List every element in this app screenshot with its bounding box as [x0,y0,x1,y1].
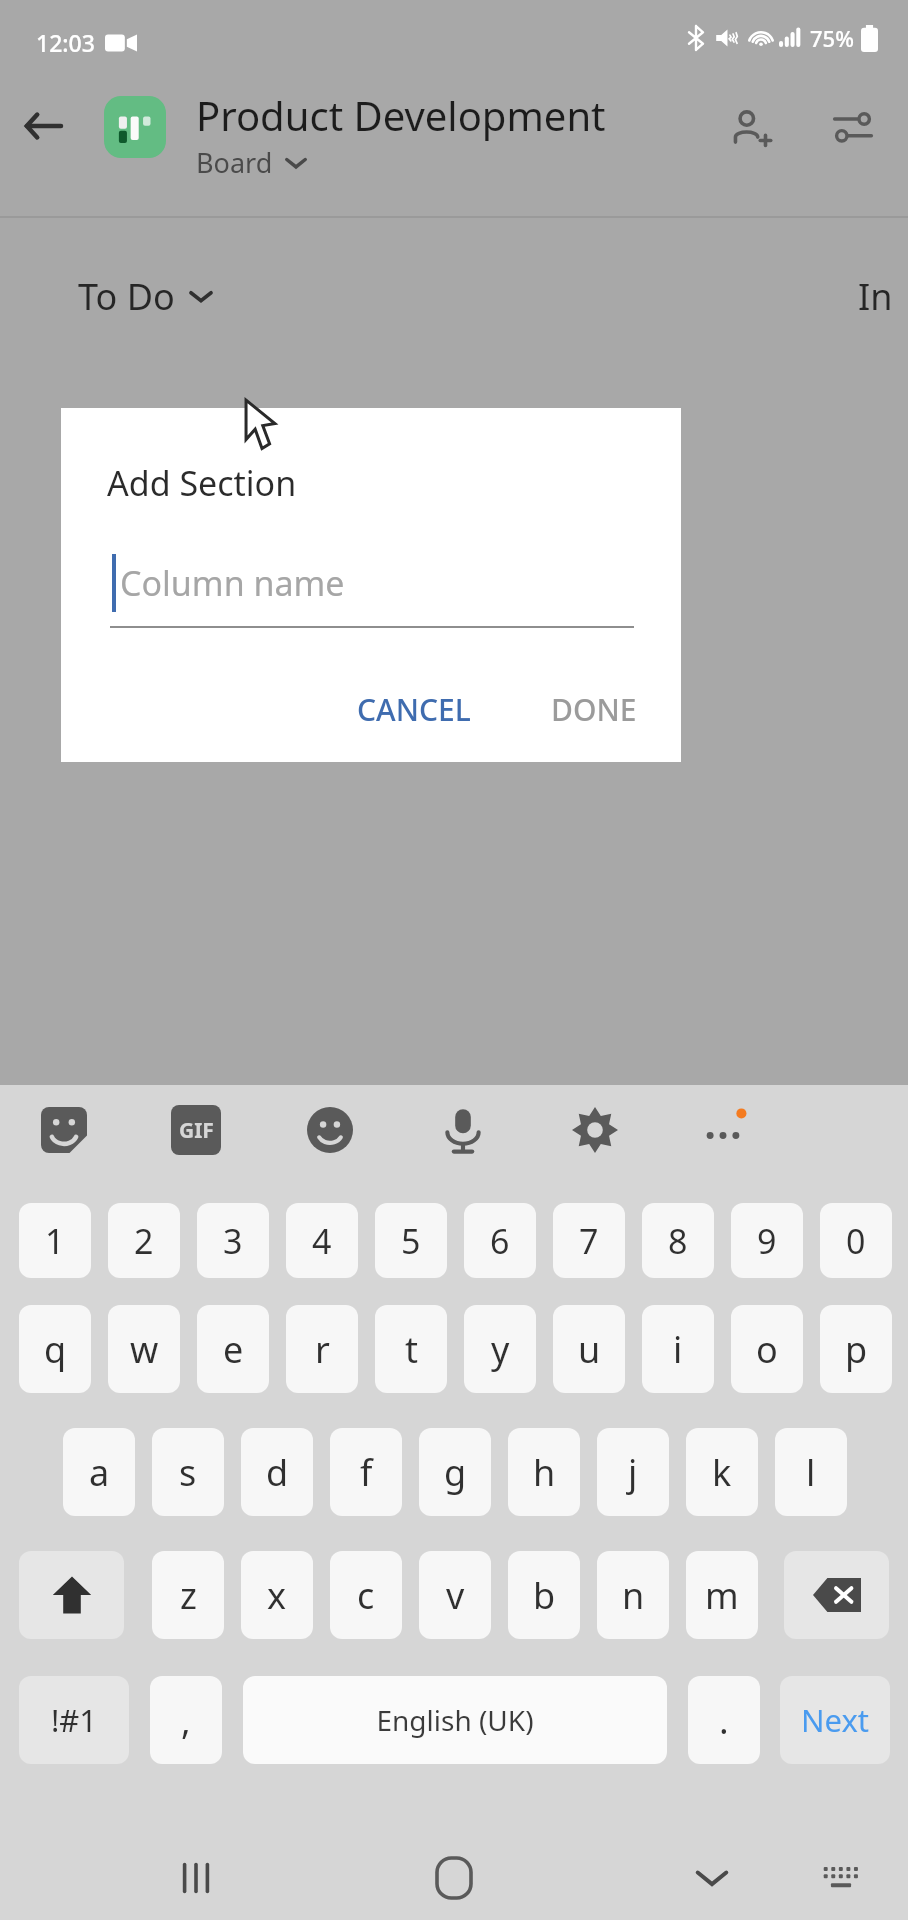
button[interactable]: x [241,1551,313,1639]
button[interactable]: Board [196,144,307,181]
staticText: To Do [78,272,175,321]
staticText: GIF [179,1116,214,1145]
button[interactable]: p [820,1305,892,1393]
button[interactable]: q [19,1305,91,1393]
staticText: 4 [312,1218,332,1264]
button[interactable]: Recent apps [163,1845,229,1911]
button[interactable]: 3 [197,1203,269,1278]
button[interactable]: 0 [820,1203,892,1278]
button[interactable]: g [419,1428,491,1516]
button[interactable]: z [152,1551,224,1639]
button[interactable]: c [330,1551,402,1639]
button[interactable]: Filter settings [818,92,888,162]
button[interactable]: Shift [19,1551,124,1639]
button[interactable]: GIF [171,1105,221,1155]
staticText: n [622,1571,645,1620]
staticText: r [315,1325,330,1374]
staticText: 3 [223,1218,243,1264]
staticText: c [357,1571,375,1620]
staticText: y [491,1325,510,1374]
button[interactable]: a [63,1428,135,1516]
staticText: Add Section [107,460,297,506]
staticText: a [89,1448,110,1497]
staticText: 12:03 [36,27,95,58]
button[interactable]: DONE [533,675,655,744]
button[interactable]: w [108,1305,180,1393]
staticText: 6 [490,1218,510,1264]
button[interactable]: More options [687,1094,759,1166]
staticText: 8 [668,1218,688,1264]
button[interactable]: . [688,1676,760,1764]
staticText: . [719,1696,729,1745]
button[interactable]: h [508,1428,580,1516]
button[interactable]: e [197,1305,269,1393]
button[interactable]: !#1 [19,1676,129,1764]
button[interactable]: k [686,1428,758,1516]
staticText: In [858,272,893,321]
button[interactable]: r [286,1305,358,1393]
staticText: l [806,1448,816,1497]
staticText: t [405,1325,418,1374]
button[interactable]: Home [421,1845,487,1911]
button[interactable]: 7 [553,1203,625,1278]
button[interactable]: Back [12,95,74,157]
button[interactable]: 2 [108,1203,180,1278]
button[interactable]: Board icon [104,96,166,158]
staticText: 5 [401,1218,421,1264]
button[interactable]: i [642,1305,714,1393]
button[interactable]: Hide keyboard [679,1845,745,1911]
staticText: 7 [579,1218,599,1264]
button[interactable]: 6 [464,1203,536,1278]
button[interactable]: y [464,1305,536,1393]
button[interactable]: l [775,1428,847,1516]
button[interactable]: 1 [19,1203,91,1278]
button[interactable]: Keyboard settings [559,1094,631,1166]
staticText: o [756,1325,778,1374]
staticText: Product Development [196,88,606,142]
button[interactable]: d [241,1428,313,1516]
button[interactable]: 9 [731,1203,803,1278]
button[interactable]: English (UK) [243,1676,667,1764]
button[interactable]: m [686,1551,758,1639]
button[interactable]: , [150,1676,222,1764]
button[interactable]: v [419,1551,491,1639]
staticText: g [444,1448,467,1497]
button[interactable]: Change keyboard [810,1847,872,1909]
button[interactable]: Column name [110,548,634,628]
staticText: m [705,1571,739,1620]
button[interactable]: Backspace [784,1551,889,1639]
staticText: Next [801,1699,870,1741]
button[interactable]: b [508,1551,580,1639]
button[interactable]: f [330,1428,402,1516]
button[interactable]: 4 [286,1203,358,1278]
staticText: , [181,1696,191,1745]
button[interactable]: u [553,1305,625,1393]
button[interactable]: Add member [716,92,786,162]
staticText: Board [196,144,273,181]
button[interactable]: CANCEL [339,675,489,744]
staticText: v [446,1571,465,1620]
button[interactable]: j [597,1428,669,1516]
button[interactable]: t [375,1305,447,1393]
button[interactable]: Emoji [294,1094,366,1166]
button[interactable]: Voice input [427,1094,499,1166]
staticText: k [712,1448,732,1497]
staticText: x [267,1571,287,1620]
button[interactable]: o [731,1305,803,1393]
button[interactable]: Next [780,1676,890,1764]
button[interactable]: 8 [642,1203,714,1278]
button[interactable]: n [597,1551,669,1639]
button[interactable]: Stickers [28,1094,100,1166]
staticText: Column name [120,560,345,606]
staticText: 75% [810,23,854,53]
staticText: f [360,1448,373,1497]
staticText: d [266,1448,289,1497]
staticText: u [578,1325,601,1374]
staticText: English (UK) [376,1701,534,1739]
button[interactable]: s [152,1428,224,1516]
button[interactable]: 5 [375,1203,447,1278]
staticText: h [533,1448,556,1497]
staticText: 1 [45,1218,65,1264]
staticText: CANCEL [357,689,471,730]
button[interactable]: To Do [78,272,213,321]
